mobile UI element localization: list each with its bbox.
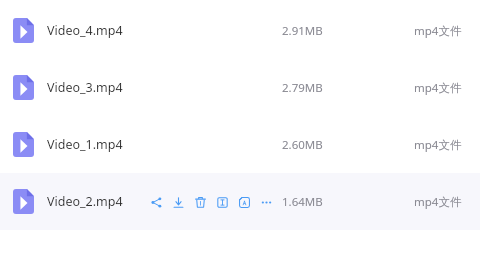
- button[interactable]: More options: [255, 190, 277, 214]
- staticText: mp4文件: [414, 23, 462, 39]
- button[interactable]: Video_4.mp4: [0, 2, 480, 59]
- staticText: 2.91MB: [282, 23, 323, 39]
- staticText: Video_2.mp4: [47, 193, 123, 210]
- button[interactable]: Delete: [189, 190, 211, 214]
- staticText: 2.79MB: [282, 80, 323, 96]
- staticText: mp4文件: [414, 137, 462, 153]
- staticText: mp4文件: [414, 80, 462, 96]
- staticText: 1.64MB: [282, 194, 323, 210]
- button[interactable]: Share: [145, 190, 167, 214]
- button[interactable]: Rename: [211, 190, 233, 214]
- staticText: Video_1.mp4: [47, 136, 123, 153]
- button[interactable]: Download: [167, 190, 189, 214]
- staticText: Video_4.mp4: [47, 22, 123, 39]
- staticText: 2.60MB: [282, 137, 323, 153]
- button[interactable]: Video_1.mp4: [0, 116, 480, 173]
- button[interactable]: Video_3.mp4: [0, 59, 480, 116]
- button[interactable]: Video_2.mp4: [0, 173, 480, 230]
- staticText: Video_3.mp4: [47, 79, 123, 96]
- staticText: mp4文件: [414, 194, 462, 210]
- button[interactable]: AI summary: [233, 190, 255, 214]
